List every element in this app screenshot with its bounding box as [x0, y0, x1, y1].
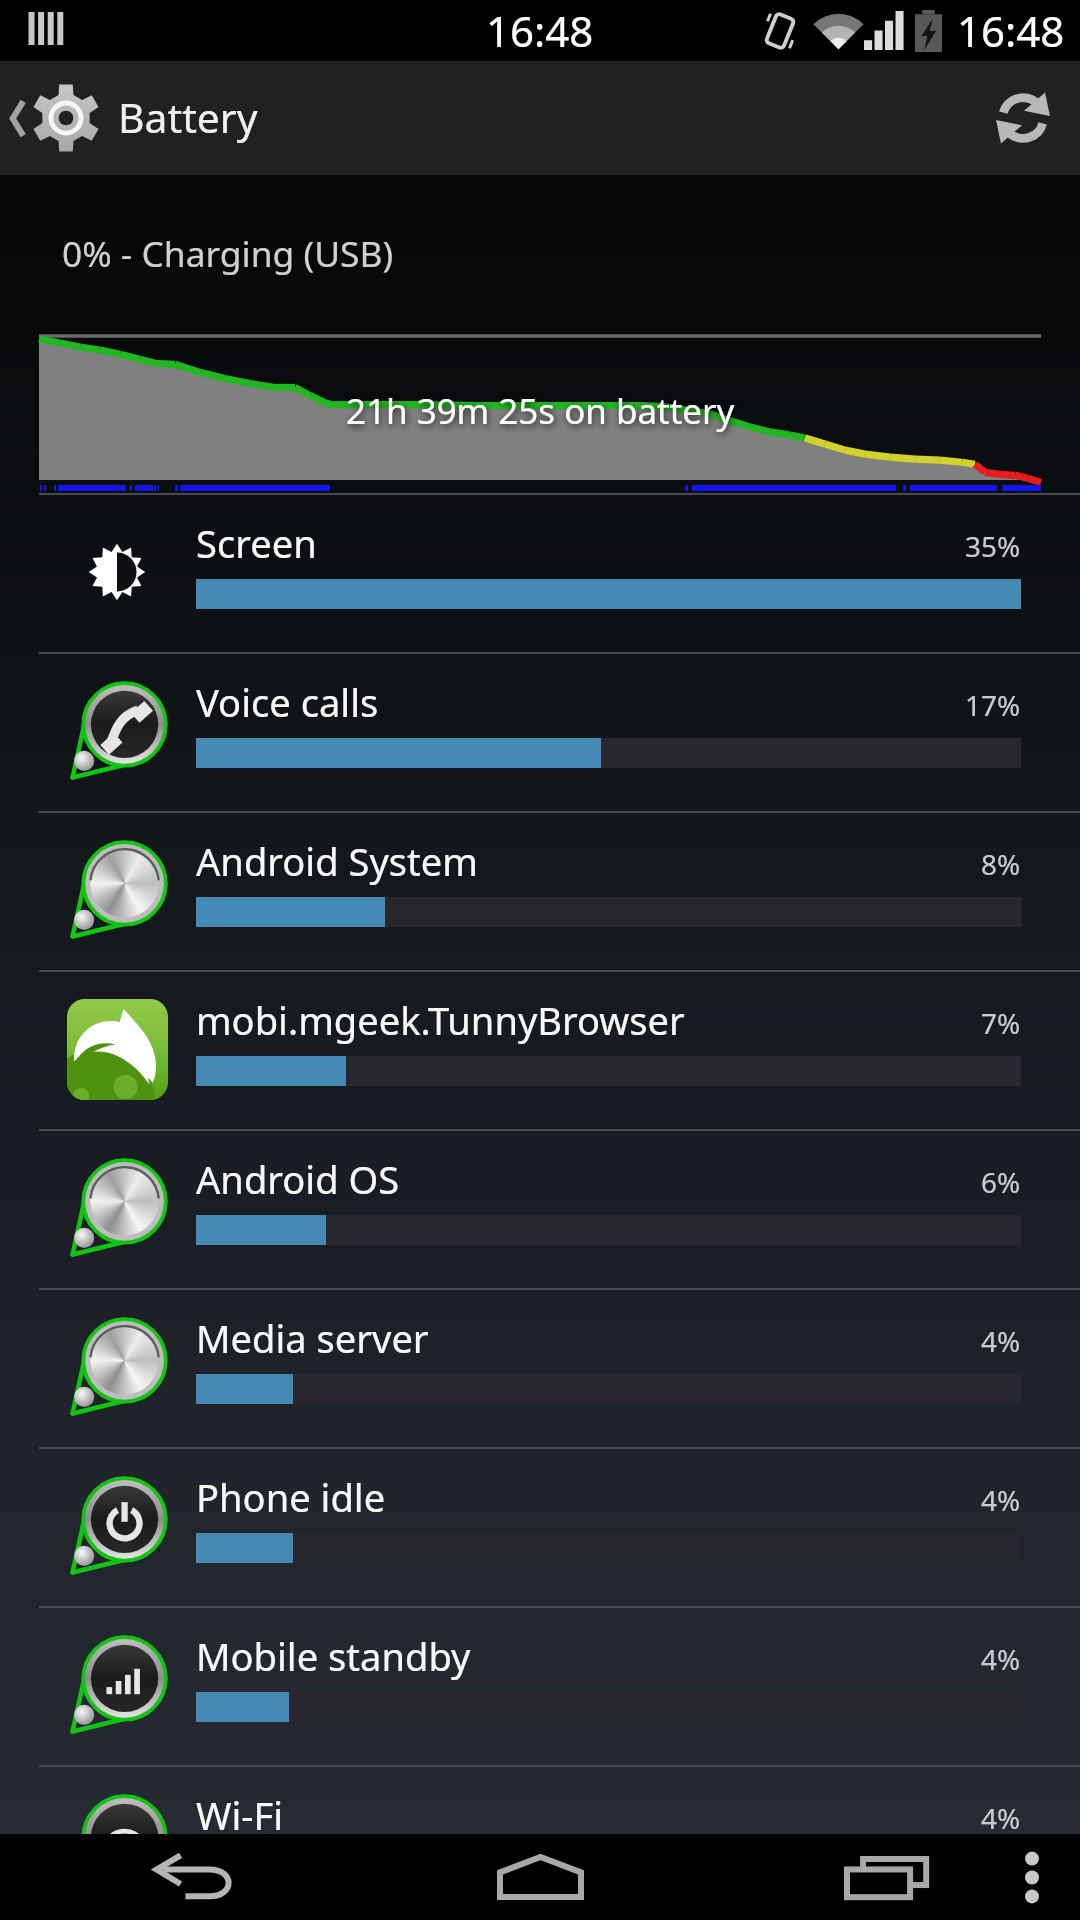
button[interactable]: Media server: [0, 1288, 1080, 1447]
staticText: Android System: [196, 835, 478, 887]
staticText: 4%: [981, 1322, 1021, 1360]
staticText: Wi-Fi: [196, 1789, 284, 1841]
button[interactable]: Wi-Fi: [0, 1765, 1080, 1920]
staticText: 16:48: [486, 2, 594, 59]
button[interactable]: Home: [462, 1834, 618, 1920]
button[interactable]: Screen: [0, 493, 1080, 652]
button[interactable]: mobi.mgeek.TunnyBrowser: [0, 970, 1080, 1129]
button[interactable]: Android System: [0, 811, 1080, 970]
button[interactable]: Mobile standby: [0, 1606, 1080, 1765]
staticText: 4%: [981, 1640, 1021, 1678]
staticText: 17%: [965, 686, 1021, 724]
button[interactable]: Recent apps: [810, 1834, 960, 1920]
button[interactable]: Refresh: [966, 61, 1080, 175]
button[interactable]: Android OS: [0, 1129, 1080, 1288]
button[interactable]: Back: [120, 1834, 270, 1920]
staticText: 8%: [981, 845, 1021, 883]
staticText: mobi.mgeek.TunnyBrowser: [196, 994, 685, 1046]
staticText: Battery: [118, 89, 258, 145]
button[interactable]: Voice calls: [0, 652, 1080, 811]
button[interactable]: Phone idle: [0, 1447, 1080, 1606]
staticText: 6%: [981, 1163, 1021, 1201]
staticText: Screen: [196, 517, 317, 569]
staticText: 21h 39m 25s on battery: [346, 387, 735, 435]
staticText: 4%: [981, 1481, 1021, 1519]
staticText: 16:48: [957, 2, 1065, 59]
staticText: 0% - Charging (USB): [62, 229, 394, 277]
staticText: 4%: [981, 1799, 1021, 1837]
button[interactable]: Battery: [0, 61, 258, 175]
staticText: Phone idle: [196, 1471, 386, 1523]
staticText: 35%: [965, 527, 1021, 565]
staticText: Voice calls: [196, 676, 379, 728]
staticText: 7%: [981, 1004, 1021, 1042]
staticText: Android OS: [196, 1153, 400, 1205]
button[interactable]: More options: [996, 1834, 1068, 1920]
staticText: Media server: [196, 1312, 429, 1364]
staticText: Mobile standby: [196, 1630, 471, 1682]
